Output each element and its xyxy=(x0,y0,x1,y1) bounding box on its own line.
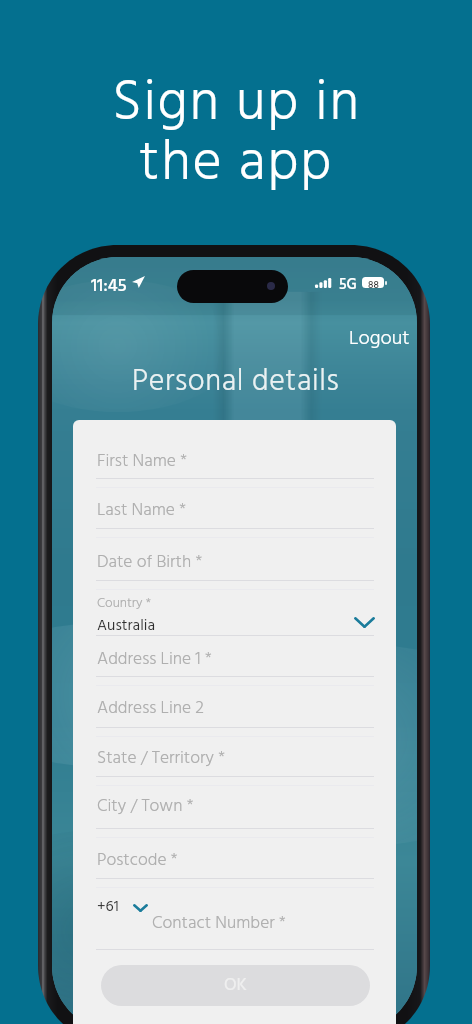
staticText: Contact Number * xyxy=(152,910,286,938)
button[interactable]: Address Line 1 * xyxy=(96,636,374,677)
button[interactable]: Country * xyxy=(96,581,374,636)
staticText: Address Line 1 * xyxy=(97,646,212,674)
button[interactable]: OK xyxy=(101,965,370,1006)
staticText: First Name * xyxy=(97,448,187,476)
button[interactable]: Address Line 2 xyxy=(96,677,374,728)
staticText: 11:45 xyxy=(91,272,127,301)
button[interactable]: Postcode * xyxy=(96,829,374,879)
button[interactable]: Date of Birth * xyxy=(96,529,374,581)
staticText: City / Town * xyxy=(97,793,194,821)
staticText: OK xyxy=(224,971,247,1000)
staticText: Address Line 2 xyxy=(97,695,204,723)
staticText: Date of Birth * xyxy=(97,549,203,577)
staticText: Sign up in xyxy=(112,60,361,150)
button[interactable]: +61 xyxy=(97,895,148,920)
staticText: Personal details xyxy=(132,358,340,406)
other: Select country code xyxy=(133,904,148,912)
staticText: State / Territory * xyxy=(97,745,225,773)
other: Select country xyxy=(354,617,375,628)
staticText: Logout xyxy=(349,323,410,355)
button[interactable]: State / Territory * xyxy=(96,728,374,777)
staticText: the app xyxy=(139,120,333,210)
staticText: +61 xyxy=(97,895,119,920)
staticText: Postcode * xyxy=(97,847,178,875)
button[interactable]: Logout xyxy=(345,320,414,358)
staticText: Australia xyxy=(97,614,156,639)
staticText: 88 xyxy=(368,277,379,288)
staticText: Last Name * xyxy=(97,497,186,525)
button[interactable]: First Name * xyxy=(96,429,374,479)
staticText: Country * xyxy=(97,593,152,615)
staticText: 5G xyxy=(339,273,357,297)
button[interactable]: Last Name * xyxy=(96,479,374,529)
button[interactable]: City / Town * xyxy=(96,777,374,829)
